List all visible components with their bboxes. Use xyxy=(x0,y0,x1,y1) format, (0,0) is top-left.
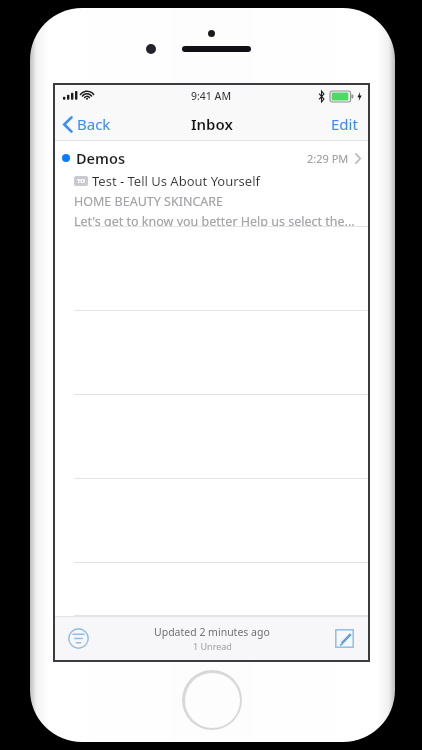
staticText: Inbox xyxy=(191,114,233,134)
staticText: Test - Tell Us About Yourself xyxy=(92,172,260,190)
staticText: Let's get to know you better Help us sel… xyxy=(74,213,355,227)
staticText: Edit xyxy=(331,114,358,134)
button[interactable]: Compose xyxy=(329,623,359,653)
button[interactable]: Back xyxy=(55,110,119,138)
button[interactable] xyxy=(55,563,368,616)
staticText: HOME BEAUTY SKINCARE xyxy=(74,193,223,210)
staticText: 2:29 PM xyxy=(307,151,349,166)
staticText: 1 Unread xyxy=(193,640,232,652)
button[interactable]: Demos xyxy=(55,141,368,227)
staticText: Updated 2 minutes ago xyxy=(154,625,270,639)
staticText: Demos xyxy=(76,148,126,168)
button[interactable]: Home xyxy=(182,670,242,730)
button[interactable]: Filter xyxy=(63,623,93,653)
staticText: Back xyxy=(77,114,111,134)
staticText: TO xyxy=(77,177,86,185)
button[interactable]: Edit xyxy=(321,109,368,139)
staticText: 9:41 AM xyxy=(191,89,232,103)
